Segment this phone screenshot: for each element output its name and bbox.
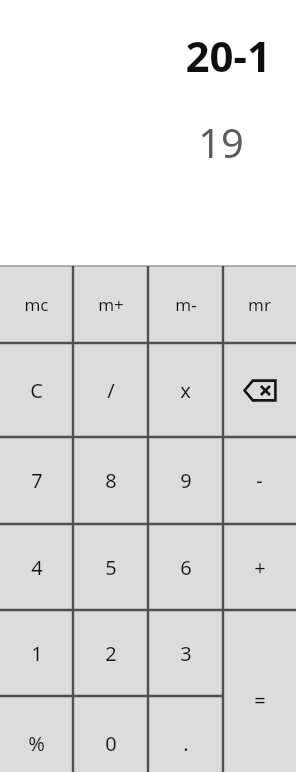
staticText: 8 bbox=[105, 467, 117, 494]
button[interactable]: C bbox=[0, 343, 73, 437]
button[interactable]: 7 bbox=[0, 437, 73, 524]
button[interactable]: % bbox=[0, 696, 73, 772]
staticText: m- bbox=[175, 293, 197, 316]
button[interactable]: 4 bbox=[0, 524, 73, 610]
button[interactable]: mr bbox=[223, 266, 296, 343]
button[interactable]: + bbox=[223, 524, 296, 610]
button[interactable]: 0 bbox=[73, 696, 148, 772]
staticText: % bbox=[28, 730, 45, 757]
staticText: 19 bbox=[0, 115, 244, 169]
button[interactable]: Backspace bbox=[223, 343, 296, 437]
staticText: 4 bbox=[31, 554, 43, 581]
button[interactable]: mc bbox=[0, 266, 73, 343]
button[interactable]: x bbox=[148, 343, 223, 437]
button[interactable]: 9 bbox=[148, 437, 223, 524]
staticText: . bbox=[183, 730, 189, 757]
button[interactable]: m- bbox=[148, 266, 223, 343]
staticText: - bbox=[256, 467, 263, 494]
button[interactable]: 2 bbox=[73, 610, 148, 696]
button[interactable]: = bbox=[223, 610, 296, 772]
button[interactable]: . bbox=[148, 696, 223, 772]
staticText: = bbox=[254, 687, 266, 714]
button[interactable]: - bbox=[223, 437, 296, 524]
button[interactable]: 6 bbox=[148, 524, 223, 610]
button[interactable]: 8 bbox=[73, 437, 148, 524]
staticText: mr bbox=[248, 293, 271, 316]
button[interactable]: / bbox=[73, 343, 148, 437]
staticText: C bbox=[30, 377, 43, 404]
staticText: 6 bbox=[180, 554, 192, 581]
staticText: 9 bbox=[180, 467, 192, 494]
staticText: 20-1 bbox=[0, 27, 271, 84]
staticText: 1 bbox=[31, 640, 43, 667]
button[interactable]: 5 bbox=[73, 524, 148, 610]
staticText: mc bbox=[24, 293, 49, 316]
staticText: m+ bbox=[98, 293, 124, 316]
staticText: 3 bbox=[180, 640, 192, 667]
button[interactable]: 1 bbox=[0, 610, 73, 696]
staticText: / bbox=[107, 377, 115, 404]
staticText: 2 bbox=[105, 640, 117, 667]
button[interactable]: 3 bbox=[148, 610, 223, 696]
staticText: 0 bbox=[105, 730, 117, 757]
staticText: x bbox=[180, 377, 191, 404]
button[interactable]: m+ bbox=[73, 266, 148, 343]
staticText: 7 bbox=[31, 467, 43, 494]
staticText: 5 bbox=[105, 554, 117, 581]
staticText: + bbox=[254, 554, 266, 581]
